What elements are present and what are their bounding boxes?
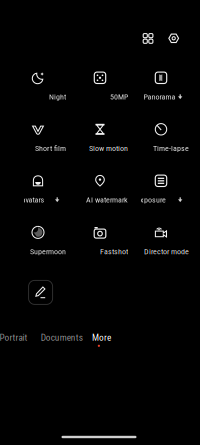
button[interactable]: Portrait bbox=[0, 326, 35, 348]
staticText: Fastshot bbox=[100, 247, 128, 256]
button[interactable]: Supermoon bbox=[7, 220, 69, 260]
button[interactable]: Time-lapse bbox=[130, 117, 192, 157]
button[interactable]: Edit modes bbox=[29, 280, 53, 304]
staticText: Night bbox=[49, 92, 66, 101]
button[interactable]: Director mode bbox=[130, 220, 192, 260]
staticText: AI watermark bbox=[86, 195, 128, 204]
button[interactable]: Documents bbox=[38, 326, 86, 348]
button[interactable]: More bbox=[80, 326, 122, 348]
button[interactable]: Night bbox=[7, 66, 69, 106]
button[interactable]: AI avatars bbox=[7, 169, 69, 209]
staticText: Time-lapse bbox=[153, 144, 189, 153]
staticText: AI avatars bbox=[12, 195, 44, 204]
button[interactable]: 50MP bbox=[69, 66, 131, 106]
staticText: More bbox=[92, 332, 111, 343]
button[interactable]: All modes bbox=[135, 25, 161, 51]
staticText: Short film bbox=[35, 144, 66, 153]
button[interactable]: AI watermark bbox=[69, 169, 131, 209]
button[interactable]: Fastshot bbox=[69, 220, 131, 260]
staticText: 50MP bbox=[110, 92, 128, 101]
button[interactable]: Slow motion bbox=[69, 117, 131, 157]
button[interactable]: Short film bbox=[7, 117, 69, 157]
staticText: Panorama bbox=[143, 92, 175, 101]
button[interactable]: Long exposure bbox=[130, 169, 192, 209]
button[interactable]: Panorama bbox=[130, 66, 192, 106]
staticText: Director mode bbox=[144, 247, 189, 256]
button[interactable]: Camera settings bbox=[161, 25, 187, 51]
staticText: Portrait bbox=[0, 332, 27, 343]
staticText: Long exposure bbox=[118, 195, 166, 204]
staticText: Supermoon bbox=[30, 247, 66, 256]
staticText: Slow motion bbox=[89, 144, 128, 153]
staticText: Documents bbox=[41, 332, 83, 343]
